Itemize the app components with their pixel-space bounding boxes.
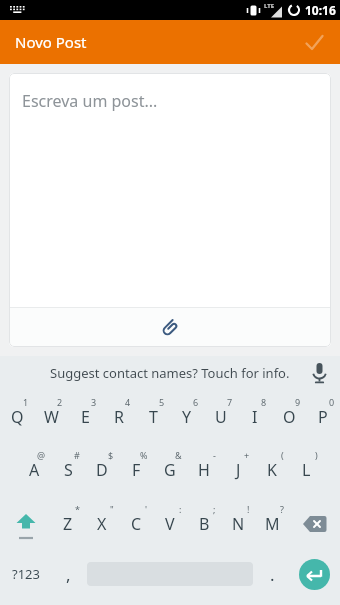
button[interactable]: Q (0, 390, 34, 443)
staticText: N (232, 513, 245, 535)
staticText: Q (11, 406, 24, 428)
staticText: H (198, 459, 210, 481)
staticText: 1 (23, 396, 29, 408)
button[interactable] (289, 547, 340, 601)
staticText: I (252, 406, 258, 428)
button[interactable]: M (255, 497, 289, 551)
staticText: Escreva um post... (22, 90, 158, 112)
button[interactable] (299, 559, 330, 590)
button[interactable] (306, 360, 332, 386)
staticText: K (267, 459, 277, 481)
staticText: Suggest contact names? Touch for info. (50, 364, 290, 382)
staticText: 7 (227, 396, 233, 408)
button[interactable]: Z (51, 497, 85, 551)
button[interactable]: X (85, 497, 119, 551)
button[interactable] (153, 311, 187, 345)
staticText: $ (108, 449, 114, 461)
staticText: ' (145, 503, 148, 515)
button[interactable]: J (221, 443, 255, 497)
staticText: LTE (264, 2, 275, 10)
staticText: 0 (329, 396, 335, 408)
staticText: B (199, 513, 210, 535)
staticText: ! (247, 503, 250, 515)
button[interactable]: T (136, 390, 170, 443)
staticText: Novo Post (15, 32, 87, 52)
staticText: O (283, 406, 296, 428)
staticText: @ (37, 449, 46, 461)
staticText: V (165, 513, 175, 535)
staticText: E (81, 406, 90, 428)
button[interactable]: K (255, 443, 289, 497)
button[interactable]: Y (170, 390, 204, 443)
staticText: S (64, 459, 73, 481)
button[interactable]: S (51, 443, 85, 497)
staticText: ( (281, 449, 284, 461)
staticText: P (318, 406, 328, 428)
staticText: 6 (193, 396, 199, 408)
staticText: , (66, 563, 71, 586)
staticText: W (44, 406, 59, 428)
staticText: 10:16 (305, 2, 336, 18)
button[interactable]: C (119, 497, 153, 551)
button[interactable]: B (187, 497, 221, 551)
staticText: 3 (91, 396, 97, 408)
button[interactable] (0, 497, 51, 551)
staticText: J (236, 459, 241, 481)
staticText: Z (63, 513, 73, 535)
button[interactable] (289, 497, 340, 551)
staticText: G (164, 459, 176, 481)
staticText: 2 (57, 396, 63, 408)
button[interactable]: G (153, 443, 187, 497)
button[interactable]: I (238, 390, 272, 443)
button[interactable]: V (153, 497, 187, 551)
staticText: * (75, 503, 80, 515)
staticText: % (140, 449, 148, 461)
button[interactable]: R (102, 390, 136, 443)
staticText: F (132, 459, 141, 481)
button[interactable]: Escreva um post... (9, 73, 331, 347)
staticText: # (74, 449, 80, 461)
button[interactable]: A (17, 443, 51, 497)
staticText: ) (315, 449, 318, 461)
button[interactable]: F (119, 443, 153, 497)
button[interactable]: . (255, 547, 289, 601)
button[interactable] (296, 24, 332, 60)
staticText: A (29, 459, 40, 481)
button[interactable]: W (34, 390, 68, 443)
button[interactable] (85, 547, 255, 601)
staticText: ?123 (12, 565, 40, 583)
staticText: X (97, 513, 107, 535)
staticText: - (213, 449, 216, 461)
button[interactable]: P (306, 390, 340, 443)
button[interactable]: U (204, 390, 238, 443)
staticText: " (110, 503, 114, 515)
staticText: : (179, 503, 182, 515)
staticText: 8 (261, 396, 267, 408)
button[interactable]: N (221, 497, 255, 551)
button[interactable]: O (272, 390, 306, 443)
button[interactable]: ?123 (0, 547, 51, 601)
staticText: T (149, 406, 158, 428)
staticText: + (244, 449, 250, 461)
button[interactable]: , (51, 547, 85, 601)
button[interactable]: H (187, 443, 221, 497)
button[interactable]: E (68, 390, 102, 443)
staticText: R (114, 406, 124, 428)
button[interactable]: L (289, 443, 323, 497)
staticText: 4 (125, 396, 131, 408)
staticText: ; (213, 503, 216, 515)
staticText: D (96, 459, 108, 481)
staticText: 9 (295, 396, 301, 408)
staticText: & (175, 449, 182, 461)
staticText: ? (280, 503, 284, 515)
staticText: C (131, 513, 142, 535)
button[interactable]: Suggest contact names? Touch for info. (0, 356, 340, 390)
staticText: L (302, 459, 311, 481)
staticText: U (215, 406, 227, 428)
staticText: Y (182, 406, 192, 428)
staticText: 5 (159, 396, 165, 408)
button[interactable]: D (85, 443, 119, 497)
staticText: M (265, 513, 280, 535)
staticText: . (270, 563, 275, 586)
